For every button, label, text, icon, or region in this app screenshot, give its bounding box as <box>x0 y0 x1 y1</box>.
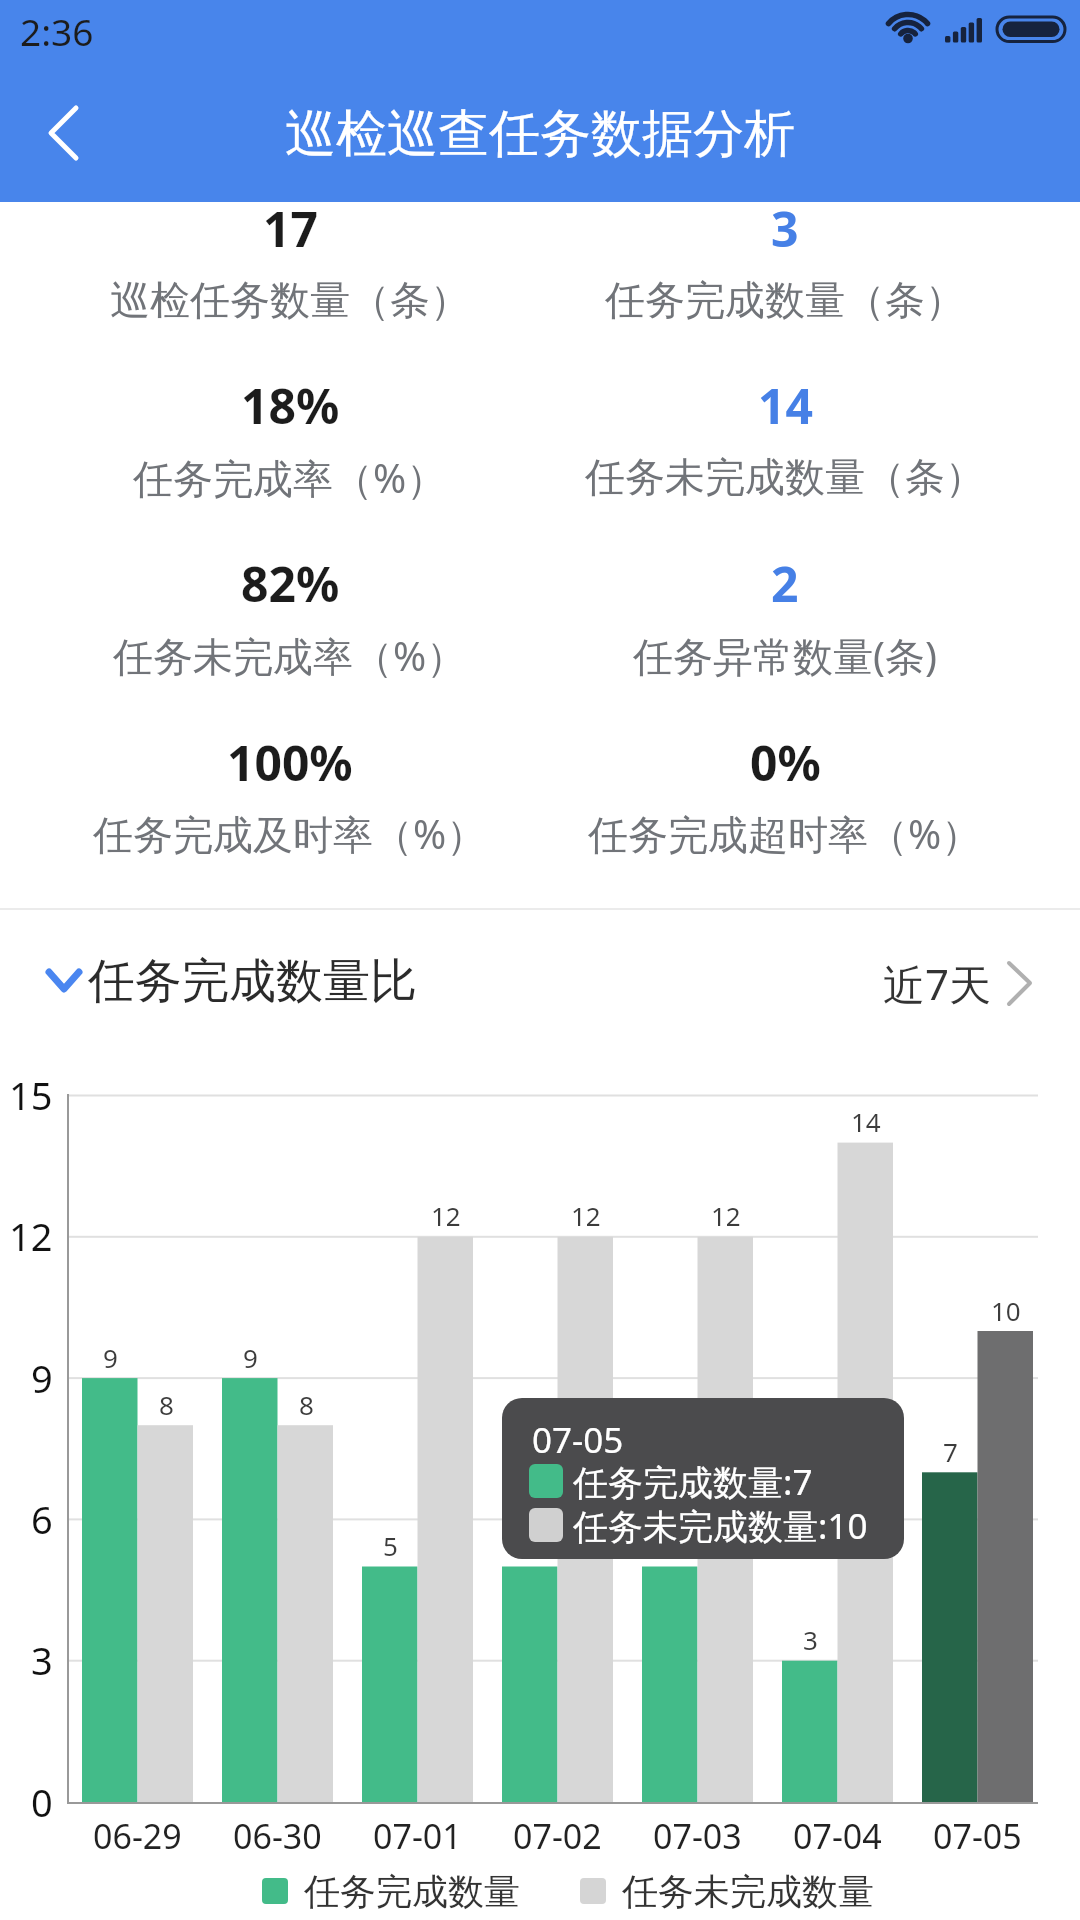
staticText: 任务完成率（%） <box>133 450 447 505</box>
staticText: 5 <box>523 1528 538 1563</box>
staticText: 14 <box>851 1104 881 1139</box>
staticText: 12 <box>9 1210 53 1262</box>
staticText: 06-29 <box>93 1813 182 1859</box>
staticText: 9 <box>31 1352 53 1404</box>
staticText: 3 <box>803 1622 818 1657</box>
staticText: 3 <box>771 196 799 261</box>
staticText: 82% <box>241 551 340 616</box>
staticText: 任务完成及时率（%） <box>93 806 487 861</box>
staticText: 任务完成数量:7 <box>573 1458 813 1506</box>
staticText: 07-05 <box>532 1416 624 1464</box>
staticText: 17 <box>263 196 318 261</box>
staticText: 18% <box>241 373 340 438</box>
staticText: 07-02 <box>513 1813 602 1859</box>
staticText: 0 <box>31 1776 53 1828</box>
staticText: 任务未完成数量 <box>622 1869 874 1914</box>
staticText: 巡检巡查任务数据分析 <box>285 102 795 166</box>
staticText: 12 <box>571 1198 601 1233</box>
staticText: 07-04 <box>793 1813 882 1859</box>
staticText: 5 <box>383 1528 398 1563</box>
staticText: 任务完成数量（条） <box>605 275 965 325</box>
staticText: 2:36 <box>20 6 94 56</box>
staticText: 07-03 <box>653 1813 742 1859</box>
staticText: 8 <box>299 1387 314 1422</box>
staticText: 0% <box>750 730 821 795</box>
staticText: 15 <box>9 1069 53 1121</box>
staticText: 9 <box>103 1340 118 1375</box>
button[interactable] <box>20 90 110 180</box>
staticText: 任务完成超时率（%） <box>588 806 982 861</box>
staticText: 任务完成数量 <box>304 1869 520 1914</box>
staticText: 12 <box>711 1198 741 1233</box>
staticText: 100% <box>227 730 353 795</box>
staticText: 8 <box>159 1387 174 1422</box>
staticText: 06-30 <box>233 1813 322 1859</box>
button[interactable] <box>860 940 1050 1030</box>
staticText: 任务未完成数量（条） <box>585 452 985 502</box>
staticText: 07-05 <box>933 1813 1022 1859</box>
staticText: 任务未完成率（%） <box>113 628 467 683</box>
staticText: 任务异常数量(条) <box>633 628 937 683</box>
staticText: 6 <box>31 1493 53 1545</box>
staticText: 巡检任务数量（条） <box>110 275 470 325</box>
staticText: 任务未完成数量:10 <box>573 1502 868 1550</box>
staticText: 2 <box>771 551 799 616</box>
staticText: 9 <box>243 1340 258 1375</box>
staticText: 10 <box>991 1293 1021 1328</box>
staticText: 5 <box>663 1528 678 1563</box>
staticText: 7 <box>943 1434 958 1469</box>
staticText: 近7天 <box>883 955 992 1012</box>
staticText: 14 <box>758 373 813 438</box>
staticText: 任务完成数量比 <box>88 952 417 1011</box>
staticText: 3 <box>31 1634 53 1686</box>
staticText: 07-01 <box>373 1813 462 1859</box>
staticText: 12 <box>431 1198 461 1233</box>
